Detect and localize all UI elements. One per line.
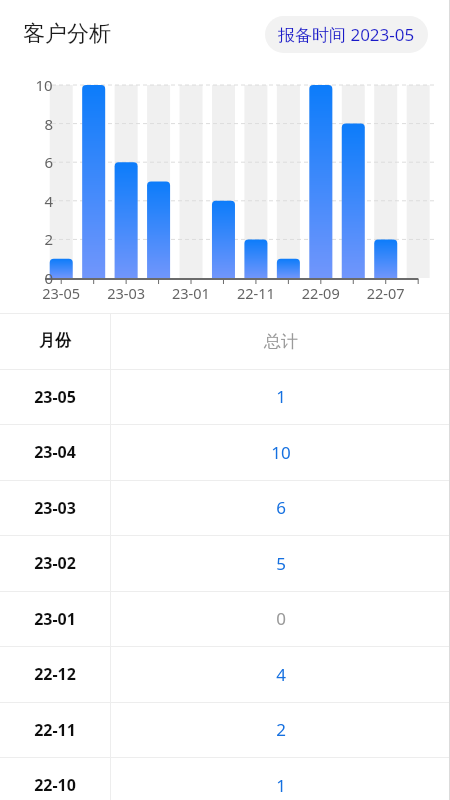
staticText: 报备时间 2023-05 [278,23,415,46]
staticText: 22-10 [34,774,76,796]
staticText: 5 [276,552,286,575]
staticText: 10 [271,441,291,464]
button[interactable]: 月份 [0,313,450,369]
staticText: 客户分析 [23,20,111,48]
button[interactable]: 报备时间 2023-05 [265,16,428,53]
staticText: 2 [276,718,286,741]
staticText: 总计 [264,331,298,352]
button[interactable]: 22-10 [0,757,450,800]
staticText: 23-02 [34,552,76,574]
staticText: 4 [276,663,286,686]
button[interactable]: 23-01 [0,591,450,646]
staticText: 6 [276,496,286,519]
button[interactable]: 23-03 [0,480,450,535]
staticText: 1 [276,385,286,408]
staticText: 22-11 [34,719,76,741]
button[interactable]: 23-02 [0,535,450,591]
staticText: 月份 [39,331,71,351]
button[interactable]: 22-12 [0,646,450,702]
button[interactable]: 23-05 [0,369,450,424]
staticText: 23-03 [34,497,76,519]
button[interactable]: 23-04 [0,424,450,480]
staticText: 23-04 [34,441,76,463]
staticText: 23-01 [34,608,76,630]
button[interactable]: 22-11 [0,702,450,757]
staticText: 0 [276,607,286,630]
staticText: 22-12 [34,663,76,685]
staticText: 1 [276,774,286,797]
staticText: 23-05 [34,386,76,408]
